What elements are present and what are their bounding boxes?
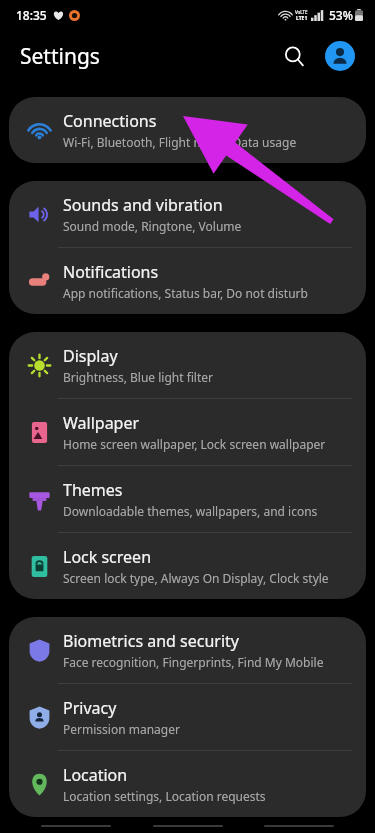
- button[interactable]: Notifications: [9, 248, 366, 314]
- staticText: Privacy: [63, 697, 117, 719]
- staticText: Brightness, Blue light filter: [63, 369, 214, 385]
- staticText: Lock screen: [63, 546, 152, 568]
- button[interactable]: Search: [273, 35, 315, 77]
- staticText: Sounds and vibration: [63, 194, 223, 216]
- staticText: 53%: [329, 7, 353, 23]
- staticText: Wi-Fi, Bluetooth, Flight mode, Data usag…: [63, 134, 297, 150]
- staticText: Wallpaper: [63, 412, 140, 434]
- staticText: Settings: [20, 42, 100, 71]
- staticText: Screen lock type, Always On Display, Clo…: [63, 570, 329, 586]
- button[interactable]: Connections: [9, 97, 366, 163]
- button[interactable]: Location: [9, 751, 366, 817]
- staticText: Face recognition, Fingerprints, Find My …: [63, 654, 324, 670]
- staticText: Location settings, Location requests: [63, 788, 266, 804]
- staticText: Downloadable themes, wallpapers, and ico…: [63, 503, 318, 519]
- staticText: 18:35: [16, 7, 47, 23]
- staticText: Themes: [63, 479, 123, 501]
- staticText: Display: [63, 345, 118, 367]
- staticText: LTE1: [296, 15, 308, 22]
- staticText: Permission manager: [63, 721, 180, 737]
- staticText: Home screen wallpaper, Lock screen wallp…: [63, 436, 326, 452]
- staticText: Sound mode, Ringtone, Volume: [63, 218, 242, 234]
- button[interactable]: Biometrics and security: [9, 617, 366, 683]
- staticText: App notifications, Status bar, Do not di…: [63, 285, 308, 301]
- button[interactable]: Themes: [9, 466, 366, 532]
- staticText: Notifications: [63, 261, 159, 283]
- button[interactable]: Lock screen: [9, 533, 366, 599]
- button[interactable]: Wallpaper: [9, 399, 366, 465]
- button[interactable]: Sounds and vibration: [9, 181, 366, 247]
- button[interactable]: Account: [319, 35, 361, 77]
- button[interactable]: Privacy: [9, 684, 366, 750]
- staticText: Biometrics and security: [63, 630, 240, 652]
- button[interactable]: Display: [9, 332, 366, 398]
- staticText: Connections: [63, 110, 157, 132]
- staticText: VoLTE: [295, 9, 308, 15]
- staticText: Location: [63, 764, 128, 786]
